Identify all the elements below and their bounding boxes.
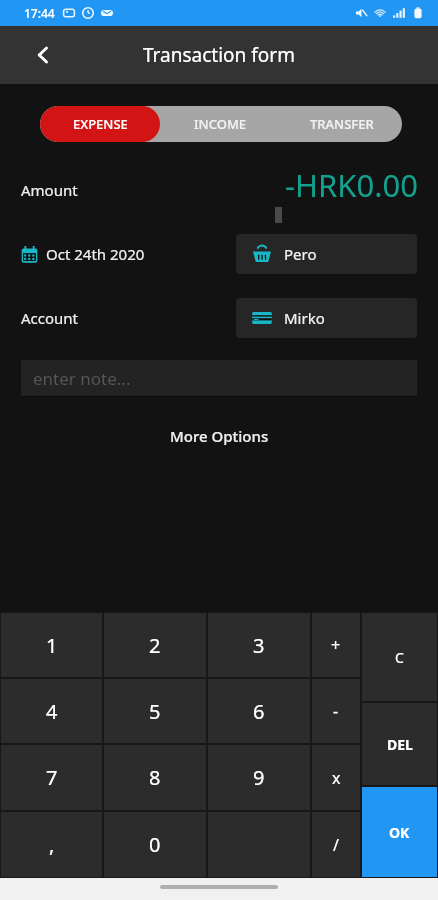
button[interactable]: Back (22, 34, 64, 76)
button[interactable]: + (312, 613, 360, 677)
button[interactable]: 5 (104, 679, 206, 743)
staticText: OK (389, 823, 410, 842)
staticText: Transaction form (143, 42, 295, 68)
staticText: 8 (149, 764, 161, 791)
staticText: DEL (387, 735, 413, 754)
staticText: Oct 24th 2020 (46, 244, 145, 264)
button[interactable]: 3 (208, 613, 310, 677)
staticText: 2 (149, 632, 161, 659)
staticText: / (333, 834, 339, 856)
button[interactable]: 8 (104, 745, 206, 810)
button[interactable]: 1 (1, 613, 102, 677)
button[interactable]: Pero (236, 234, 417, 274)
button[interactable]: enter note... (21, 360, 417, 396)
button[interactable]: TRANSFER (281, 106, 402, 142)
button[interactable]: C (362, 613, 437, 701)
staticText: INCOME (194, 115, 247, 133)
button[interactable]: INCOME (160, 106, 281, 142)
staticText: TRANSFER (310, 115, 374, 133)
staticText: , (49, 831, 55, 858)
staticText: Amount (21, 180, 78, 200)
button[interactable]: OK (362, 787, 437, 877)
staticText: 0 (149, 831, 161, 858)
staticText: 1 (46, 632, 58, 659)
staticText: + (331, 634, 341, 656)
button[interactable]: DEL (362, 703, 437, 785)
staticText: - (333, 700, 339, 722)
button[interactable]: 6 (208, 679, 310, 743)
button[interactable]: Oct 24th 2020 (21, 244, 145, 264)
staticText: Mirko (284, 308, 325, 328)
staticText: EXPENSE (73, 115, 128, 133)
staticText: -HRK0.00 (285, 164, 418, 206)
button[interactable]: 2 (104, 613, 206, 677)
button[interactable]: / (312, 812, 360, 877)
staticText: 3 (253, 632, 265, 659)
button[interactable]: , (1, 812, 102, 877)
staticText: 6 (253, 698, 265, 725)
staticText: 17:44 (24, 5, 55, 21)
staticText: 4 (46, 698, 58, 725)
button[interactable]: 4 (1, 679, 102, 743)
button[interactable]: Mirko (236, 298, 417, 338)
staticText: 9 (253, 764, 265, 791)
button[interactable]: 0 (104, 812, 206, 877)
staticText: enter note... (33, 367, 131, 390)
staticText: C (395, 648, 404, 667)
staticText: More Options (170, 426, 269, 446)
button[interactable]: 9 (208, 745, 310, 810)
staticText: Account (21, 308, 79, 328)
button[interactable]: EXPENSE (40, 106, 160, 142)
staticText: 5 (149, 698, 161, 725)
button[interactable]: x (312, 745, 360, 810)
button[interactable]: - (312, 679, 360, 743)
button[interactable]: 7 (1, 745, 102, 810)
staticText: Pero (284, 244, 317, 264)
staticText: 7 (46, 764, 58, 791)
staticText: x (332, 767, 341, 789)
button[interactable]: More Options (156, 420, 283, 452)
